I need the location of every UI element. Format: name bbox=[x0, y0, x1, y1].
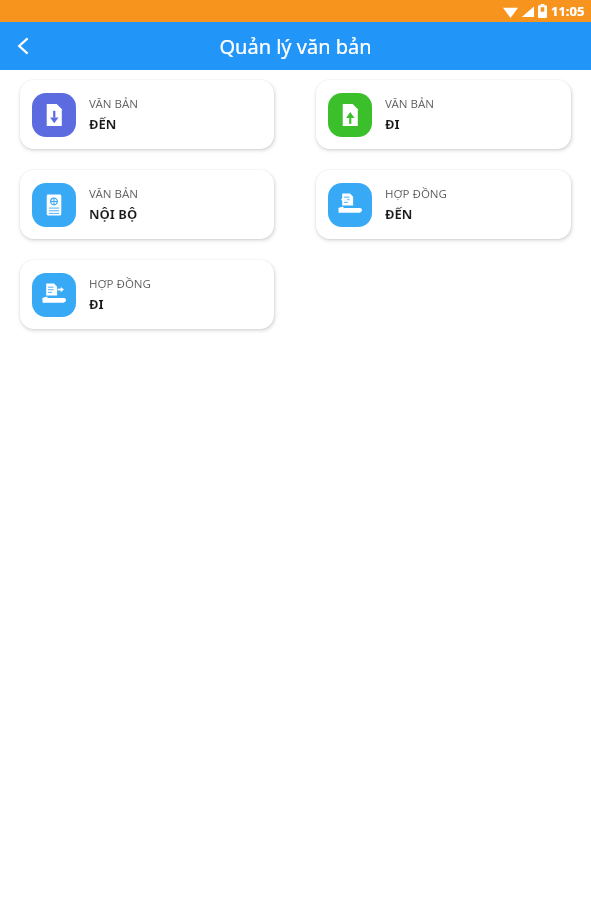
staticText: VĂN BẢN bbox=[89, 186, 139, 202]
button[interactable]: Back bbox=[0, 22, 48, 70]
staticText: ĐI bbox=[385, 115, 400, 133]
staticText: Quản lý văn bản bbox=[219, 33, 372, 60]
staticText: VĂN BẢN bbox=[89, 96, 139, 112]
staticText: HỢP ĐỒNG bbox=[385, 186, 447, 202]
staticText: ĐẾN bbox=[89, 115, 117, 133]
staticText: HỢP ĐỒNG bbox=[89, 276, 151, 292]
button[interactable]: VĂN BẢN bbox=[20, 170, 274, 239]
staticText: 11:05 bbox=[551, 2, 585, 20]
staticText: NỘI BỘ bbox=[89, 205, 138, 223]
staticText: ĐẾN bbox=[385, 205, 413, 223]
staticText: VĂN BẢN bbox=[385, 96, 435, 112]
staticText: ĐI bbox=[89, 295, 104, 313]
button[interactable]: HỢP ĐỒNG bbox=[20, 260, 274, 329]
button[interactable]: HỢP ĐỒNG bbox=[316, 170, 571, 239]
button[interactable]: VĂN BẢN bbox=[20, 80, 274, 149]
button[interactable]: VĂN BẢN bbox=[316, 80, 571, 149]
